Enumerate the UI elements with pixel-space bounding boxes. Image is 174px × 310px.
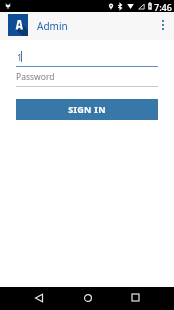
staticText: SIGN IN [68,103,106,115]
button[interactable]: Back [29,288,48,307]
button[interactable]: SIGN IN [16,99,158,120]
button[interactable]: More options [152,14,174,36]
staticText: 7:46 [154,1,172,13]
button[interactable]: Home [78,288,97,307]
button[interactable]: Recent apps [126,288,145,307]
staticText: Password [16,71,55,83]
staticText: Admin [37,19,68,33]
staticText: 1 [17,51,23,63]
